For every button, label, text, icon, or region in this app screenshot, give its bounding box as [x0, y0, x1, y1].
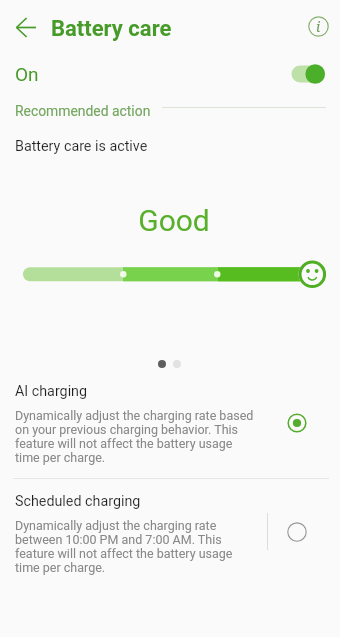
button[interactable]: AI charging: [0, 378, 340, 474]
staticText: Good: [4, 203, 340, 238]
staticText: Dynamically adjust the charging rate bas…: [15, 408, 254, 465]
staticText: On: [15, 63, 39, 85]
staticText: Battery care is active: [15, 138, 148, 155]
staticText: i: [316, 17, 321, 36]
button[interactable]: Scheduled charging: [273, 509, 321, 557]
staticText: AI charging: [15, 383, 88, 400]
button[interactable]: Scheduled charging: [0, 488, 340, 584]
staticText: Scheduled charging: [15, 493, 141, 510]
button[interactable]: Back: [4, 5, 48, 49]
staticText: Battery care: [51, 16, 172, 42]
staticText: Recommended action: [15, 103, 151, 119]
button[interactable]: AI charging: [273, 399, 321, 447]
staticText: Dynamically adjust the charging rate bet…: [15, 518, 233, 575]
button[interactable]: Information: [296, 4, 340, 48]
button[interactable]: On: [0, 57, 340, 91]
